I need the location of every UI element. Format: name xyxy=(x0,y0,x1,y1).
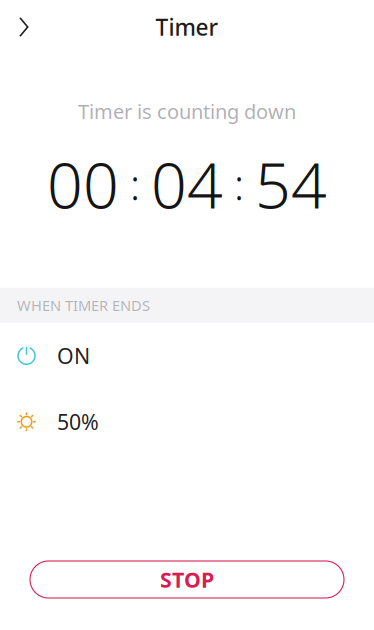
staticText: 00 xyxy=(47,143,119,226)
staticText: Timer xyxy=(155,12,218,42)
staticText: 50% xyxy=(57,408,99,436)
button[interactable]: STOP xyxy=(30,561,344,598)
staticText: : xyxy=(119,157,151,212)
staticText: 04 xyxy=(151,143,223,226)
staticText: Timer is counting down xyxy=(78,98,296,125)
button[interactable]: 50% xyxy=(0,389,374,455)
button[interactable]: Back xyxy=(0,9,45,45)
button[interactable]: ON xyxy=(0,323,374,389)
staticText: ON xyxy=(57,342,90,370)
staticText: : xyxy=(223,157,255,212)
staticText: WHEN TIMER ENDS xyxy=(17,295,150,315)
staticText: 54 xyxy=(255,143,327,226)
staticText: STOP xyxy=(160,565,214,594)
